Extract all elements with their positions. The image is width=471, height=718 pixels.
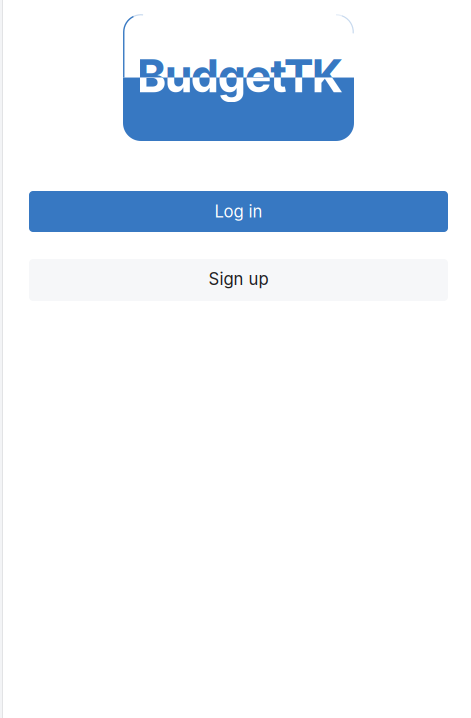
staticText: Sign up <box>208 269 268 289</box>
staticText: BudgetTK <box>137 49 341 103</box>
staticText: BudgetTK <box>137 49 341 103</box>
button[interactable]: Log in <box>29 191 448 232</box>
button[interactable]: Sign up <box>29 259 448 301</box>
staticText: Log in <box>214 201 262 222</box>
